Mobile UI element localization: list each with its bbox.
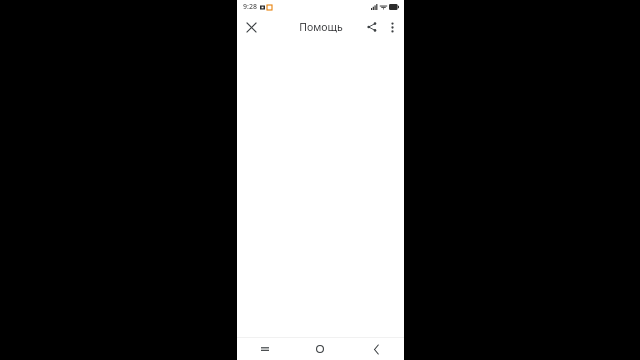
button[interactable]: More options: [382, 17, 402, 37]
staticText: 9:28: [243, 2, 257, 12]
button[interactable]: Close: [241, 17, 261, 37]
button[interactable]: Back: [348, 338, 404, 360]
button[interactable]: Recent apps: [237, 338, 292, 360]
button[interactable]: Share: [362, 17, 382, 37]
button[interactable]: Home: [292, 338, 348, 360]
staticText: Помощь: [299, 20, 343, 34]
